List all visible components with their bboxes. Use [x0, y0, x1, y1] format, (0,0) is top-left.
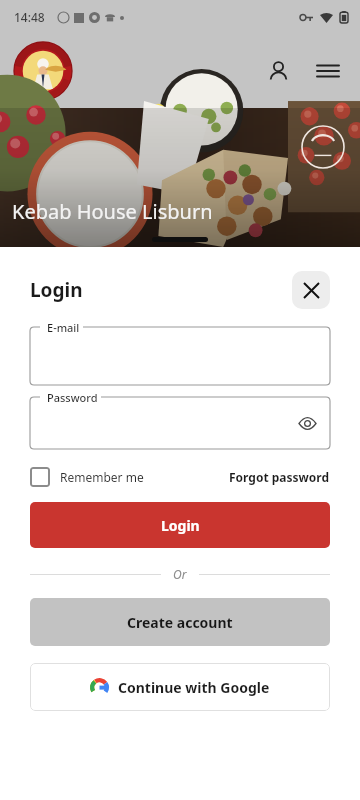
- button[interactable]: Continue with Google: [30, 663, 330, 711]
- staticText: Forgot password: [229, 469, 330, 485]
- button[interactable]: Forgot password: [229, 469, 330, 485]
- staticText: 14:48: [14, 9, 45, 25]
- button[interactable]: Close: [292, 271, 330, 309]
- button[interactable]: Login: [30, 502, 330, 548]
- staticText: Remember me: [60, 469, 144, 485]
- button[interactable]: Remember me: [30, 467, 144, 487]
- button[interactable]: Account: [260, 53, 296, 89]
- button[interactable]: [30, 327, 330, 385]
- staticText: E-mail: [47, 320, 80, 335]
- staticText: Login: [161, 516, 200, 535]
- button[interactable]: Menu: [310, 53, 346, 89]
- staticText: Kebab House Lisburn: [12, 198, 213, 225]
- staticText: Or: [173, 566, 187, 582]
- staticText: Continue with Google: [118, 678, 270, 697]
- button[interactable]: Create account: [30, 598, 330, 646]
- button[interactable]: Show password: [292, 408, 322, 438]
- button[interactable]: [30, 397, 330, 449]
- staticText: Create account: [127, 613, 233, 632]
- staticText: Login: [30, 277, 83, 303]
- staticText: Password: [47, 390, 98, 405]
